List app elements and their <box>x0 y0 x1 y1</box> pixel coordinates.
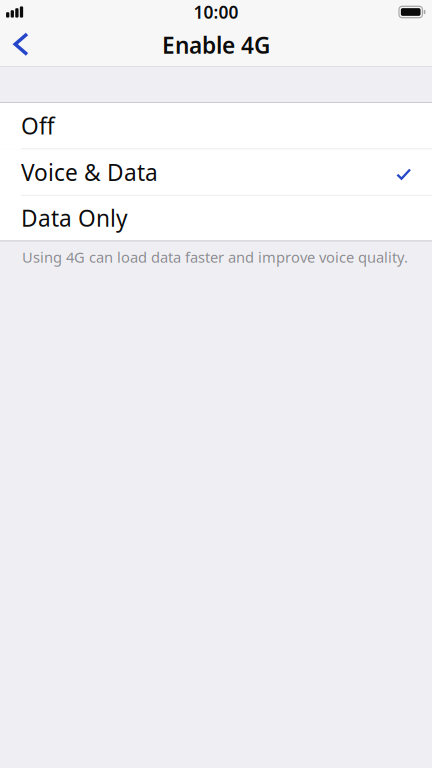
staticText: Data Only <box>21 203 128 233</box>
staticText: Enable 4G <box>162 30 270 60</box>
button[interactable]: Back <box>0 27 41 63</box>
button[interactable]: Voice & Data <box>0 149 432 196</box>
staticText: 10:00 <box>193 0 238 23</box>
staticText: Voice & Data <box>21 157 158 187</box>
staticText: Off <box>21 111 55 141</box>
staticText: Using 4G can load data faster and improv… <box>22 247 408 267</box>
button[interactable]: Data Only <box>0 196 432 240</box>
button[interactable]: Off <box>0 103 432 149</box>
